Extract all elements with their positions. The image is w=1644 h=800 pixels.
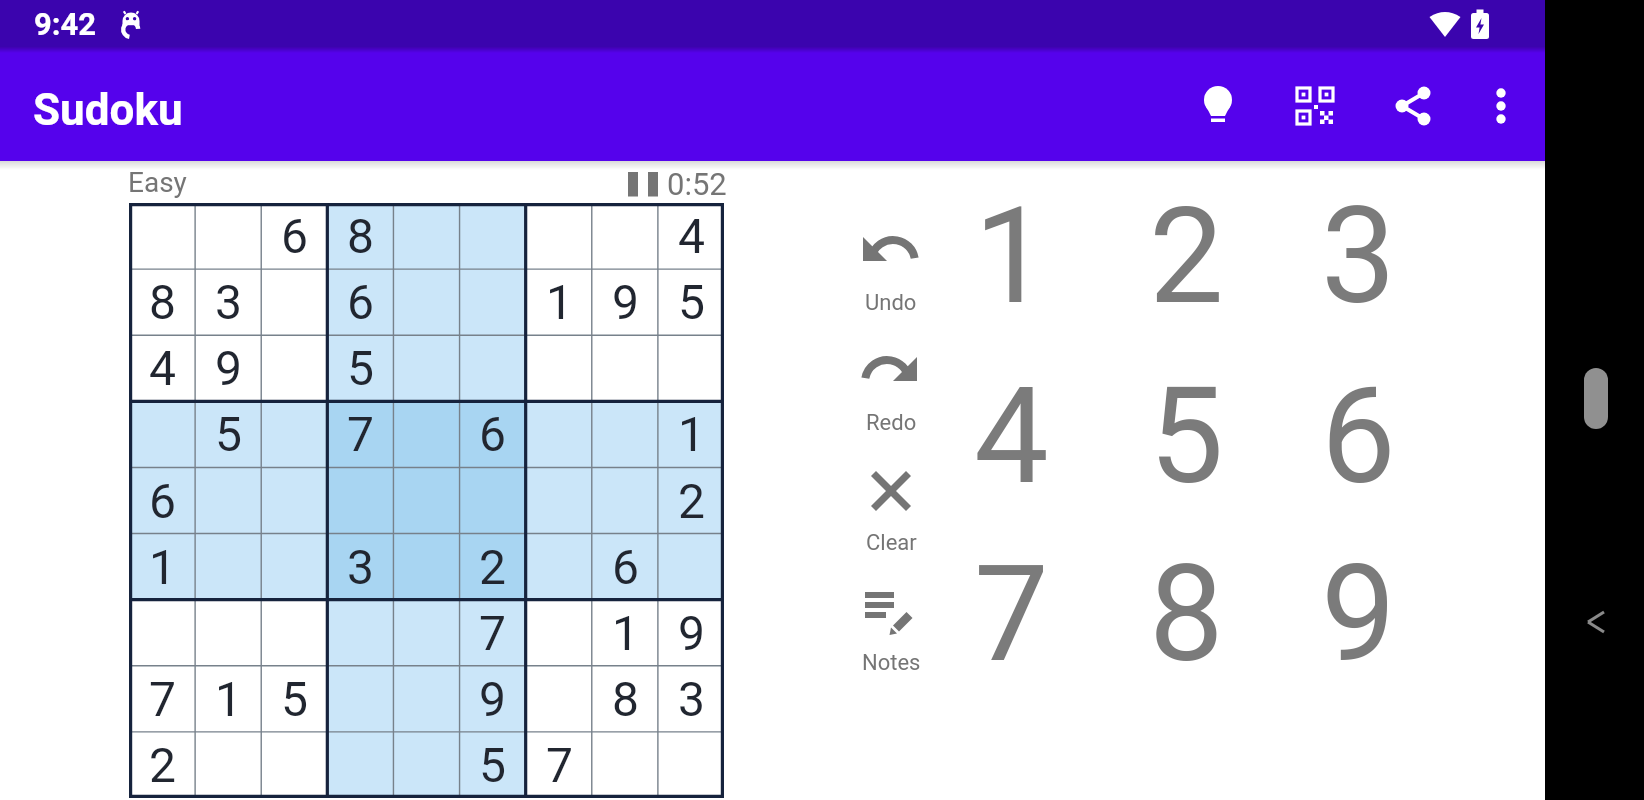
staticText: Redo bbox=[866, 410, 917, 436]
staticText: 2 bbox=[678, 473, 705, 529]
button[interactable] bbox=[1379, 72, 1447, 140]
staticText: Undo bbox=[865, 290, 917, 316]
staticText: 3 bbox=[347, 539, 374, 595]
staticText: 3 bbox=[1321, 179, 1396, 335]
staticText: 9 bbox=[215, 340, 242, 396]
button[interactable] bbox=[1574, 600, 1618, 644]
staticText: 2 bbox=[1149, 179, 1224, 335]
button[interactable]: 8 bbox=[1106, 527, 1266, 702]
staticText: 5 bbox=[281, 671, 308, 727]
staticText: 5 bbox=[678, 274, 705, 330]
button[interactable]: 7 bbox=[931, 527, 1091, 702]
staticText: 6 bbox=[149, 473, 176, 529]
staticText: Sudoku bbox=[33, 84, 183, 132]
staticText: 4 bbox=[678, 208, 705, 264]
staticText: 1 bbox=[546, 274, 573, 330]
staticText: 1 bbox=[215, 671, 242, 727]
button[interactable] bbox=[129, 203, 724, 798]
staticText: 6 bbox=[347, 274, 374, 330]
staticText: 1 bbox=[974, 179, 1049, 335]
staticText: 6 bbox=[612, 539, 639, 595]
staticText: 0:52 bbox=[667, 166, 727, 200]
staticText: 3 bbox=[678, 671, 705, 727]
button[interactable]: Clear bbox=[856, 466, 926, 562]
button[interactable]: 3 bbox=[1278, 169, 1438, 344]
staticText: 4 bbox=[149, 340, 176, 396]
button[interactable]: 1 bbox=[931, 169, 1091, 344]
staticText: Clear bbox=[866, 530, 917, 556]
staticText: 9:42 bbox=[34, 6, 97, 42]
staticText: 7 bbox=[149, 671, 176, 727]
staticText: 9 bbox=[479, 671, 506, 727]
button[interactable]: 2 bbox=[1106, 169, 1266, 344]
button[interactable] bbox=[618, 164, 662, 202]
staticText: 5 bbox=[479, 737, 506, 793]
staticText: 8 bbox=[149, 274, 176, 330]
staticText: 9 bbox=[1321, 537, 1396, 693]
button[interactable]: Undo bbox=[856, 226, 926, 322]
staticText: 6 bbox=[479, 406, 506, 462]
staticText: 5 bbox=[215, 406, 242, 462]
staticText: 7 bbox=[974, 537, 1049, 693]
staticText: 9 bbox=[612, 274, 639, 330]
staticText: Easy bbox=[128, 166, 187, 198]
staticText: 5 bbox=[347, 340, 374, 396]
button[interactable] bbox=[1281, 72, 1349, 140]
staticText: 8 bbox=[612, 671, 639, 727]
button[interactable]: Redo bbox=[856, 346, 926, 442]
button[interactable]: 6 bbox=[1278, 349, 1438, 524]
button[interactable]: 5 bbox=[1106, 349, 1266, 524]
staticText: 8 bbox=[1149, 537, 1224, 693]
staticText: 1 bbox=[612, 605, 639, 661]
staticText: 8 bbox=[347, 208, 374, 264]
staticText: 2 bbox=[149, 737, 176, 793]
staticText: 6 bbox=[1321, 359, 1396, 515]
staticText: 9 bbox=[678, 605, 705, 661]
staticText: 6 bbox=[281, 208, 308, 264]
staticText: 5 bbox=[1149, 359, 1224, 515]
button[interactable]: 9 bbox=[1278, 527, 1438, 702]
staticText: 7 bbox=[479, 605, 506, 661]
staticText: Notes bbox=[862, 650, 921, 676]
staticText: 2 bbox=[479, 539, 506, 595]
staticText: 1 bbox=[149, 539, 176, 595]
staticText: 7 bbox=[546, 737, 573, 793]
staticText: 4 bbox=[974, 359, 1049, 515]
button[interactable]: Notes bbox=[856, 586, 926, 682]
button[interactable] bbox=[1471, 72, 1531, 140]
staticText: 1 bbox=[678, 406, 705, 462]
button[interactable]: 4 bbox=[931, 349, 1091, 524]
staticText: 7 bbox=[347, 406, 374, 462]
button[interactable] bbox=[1184, 72, 1252, 140]
staticText: 3 bbox=[215, 274, 242, 330]
